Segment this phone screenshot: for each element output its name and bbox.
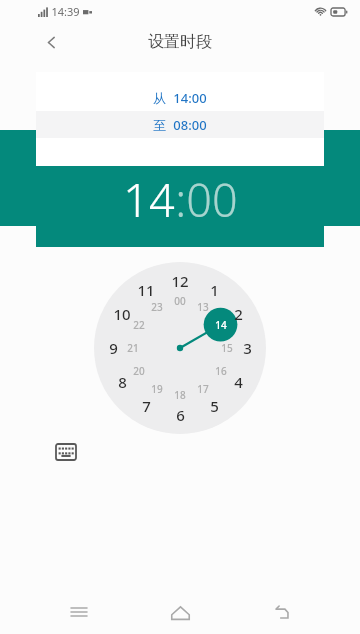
staticText: 5 (210, 396, 219, 416)
staticText: 14:00 (173, 89, 207, 107)
staticText: 15 (221, 341, 233, 355)
staticText: 6 (176, 405, 185, 425)
staticText: 11 (137, 280, 155, 300)
staticText: 08:00 (173, 116, 207, 134)
button[interactable]: 从 (36, 84, 324, 111)
staticText: 23 (151, 300, 163, 314)
button[interactable]: 至 (36, 111, 324, 138)
staticText: 16 (215, 364, 227, 378)
staticText: 14:39 (51, 4, 80, 19)
staticText: 14 (215, 318, 227, 332)
staticText: 00 (174, 294, 186, 308)
button[interactable]: Back (259, 590, 303, 634)
staticText: 18 (174, 388, 186, 402)
button[interactable]: Back (36, 27, 66, 57)
staticText: 4 (234, 372, 243, 392)
staticText: 13 (197, 300, 209, 314)
button[interactable]: Hour selector clock (94, 262, 266, 434)
staticText: :00 (175, 169, 238, 230)
staticText: 设置时段 (148, 32, 212, 52)
staticText: 20 (133, 364, 145, 378)
staticText: 8 (118, 372, 127, 392)
staticText: 17 (197, 382, 209, 396)
staticText: 10 (113, 304, 131, 324)
button[interactable]: Switch to keyboard input (56, 444, 76, 460)
staticText: 21 (127, 341, 139, 355)
staticText: 12 (171, 271, 189, 291)
button[interactable]: Home (158, 590, 202, 634)
staticText: 19 (151, 382, 163, 396)
button[interactable]: Recent apps (57, 590, 101, 634)
staticText: 7 (142, 396, 151, 416)
staticText: 从 (153, 90, 166, 106)
staticText: 22 (133, 318, 145, 332)
staticText: 1 (210, 280, 219, 300)
staticText: 2 (234, 304, 243, 324)
staticText: 3 (243, 338, 252, 358)
staticText: 9 (109, 338, 118, 358)
staticText: 至 (153, 117, 166, 133)
staticText: 14 (123, 169, 175, 230)
